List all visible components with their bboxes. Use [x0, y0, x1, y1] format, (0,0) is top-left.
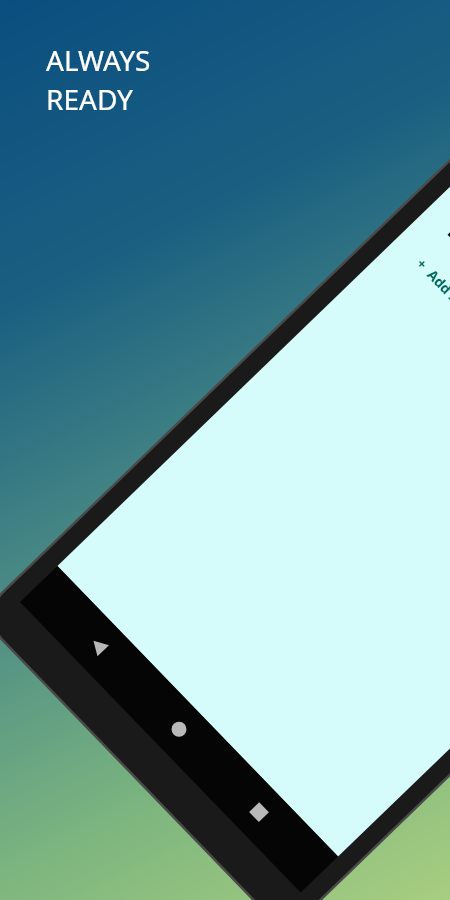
button[interactable]: Always Ready checklist promo [0, 0, 450, 900]
